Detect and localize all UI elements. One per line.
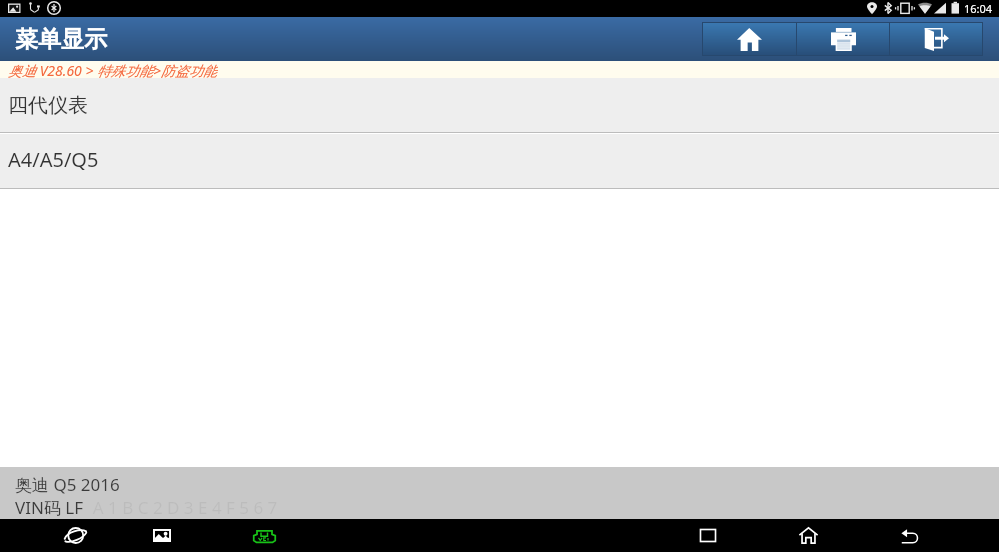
staticText: 奥迪 V28.60 > 特殊功能>防盗功能 [8, 61, 218, 78]
button[interactable]: Print [797, 23, 889, 55]
button[interactable]: Browser [58, 519, 92, 552]
button[interactable]: Gallery [145, 519, 179, 552]
button[interactable]: Back [893, 519, 927, 552]
staticText: 16:04 [964, 1, 993, 16]
button[interactable]: 四代仪表 [0, 78, 999, 132]
button[interactable]: Home [791, 519, 825, 552]
button[interactable]: Exit [890, 23, 982, 55]
button[interactable]: Recents [691, 519, 725, 552]
staticText: 菜单显示 [15, 25, 107, 54]
staticText: 奥迪 Q5 2016 [15, 473, 120, 496]
staticText: 四代仪表 [8, 93, 88, 118]
button[interactable]: A4/A5/Q5 [0, 134, 999, 188]
button[interactable]: VCI [247, 519, 281, 552]
button[interactable]: Home [703, 23, 796, 55]
staticText: VIN码 LF [15, 496, 84, 519]
staticText: A 1 B C 2 D 3 E 4 F 5 6 7 [84, 496, 278, 519]
staticText: A4/A5/Q5 [8, 146, 99, 173]
